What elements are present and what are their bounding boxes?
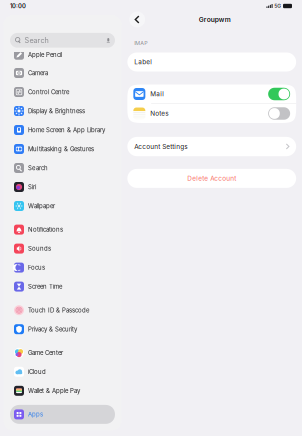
button[interactable]: Search xyxy=(10,158,115,177)
staticText: 10:00 xyxy=(10,2,26,10)
staticText: Focus xyxy=(28,264,45,271)
button[interactable]: Apple Pencil xyxy=(10,52,115,63)
button[interactable]: Delete Account xyxy=(127,169,296,188)
button[interactable]: Control Centre xyxy=(10,82,115,101)
button[interactable]: Game Center xyxy=(10,343,115,362)
staticText: Display & Brightness xyxy=(28,107,85,115)
staticText: Search xyxy=(28,164,48,172)
staticText: Privacy & Security xyxy=(28,326,77,333)
button[interactable]: iCloud xyxy=(10,362,115,381)
button[interactable]: Siri xyxy=(10,177,115,196)
button[interactable]: Display & Brightness xyxy=(10,101,115,120)
staticText: Wallpaper xyxy=(28,202,55,210)
button[interactable]: Camera xyxy=(10,63,115,82)
button[interactable]: Back xyxy=(128,10,147,29)
button[interactable]: Screen Time xyxy=(10,277,115,296)
staticText: Wallet & Apple Pay xyxy=(28,387,80,394)
button[interactable]: Apps xyxy=(10,405,115,424)
staticText: Delete Account xyxy=(187,174,236,182)
staticText: Apple Pencil xyxy=(28,51,62,58)
button[interactable]: Multitasking & Gestures xyxy=(10,139,115,158)
staticText: Home Screen & App Library xyxy=(28,126,105,134)
button[interactable]: Focus xyxy=(10,258,115,277)
button[interactable]: Sounds xyxy=(10,239,115,258)
staticText: Game Center xyxy=(28,349,63,356)
button[interactable]: Privacy & Security xyxy=(10,320,115,339)
button[interactable]: Account Settings xyxy=(127,137,296,156)
staticText: Siri xyxy=(28,183,36,191)
staticText: Camera xyxy=(28,69,48,77)
staticText: Account Settings xyxy=(134,143,187,150)
staticText: Label xyxy=(134,58,152,66)
button[interactable]: Touch ID & Passcode xyxy=(10,301,115,320)
staticText: Screen Time xyxy=(28,283,62,290)
staticText: Search xyxy=(25,36,49,45)
staticText: iCloud xyxy=(28,368,46,375)
staticText: Control Centre xyxy=(28,88,69,96)
staticText: Notes xyxy=(150,110,168,117)
button[interactable]: Notifications xyxy=(10,220,115,239)
staticText: Groupwm xyxy=(199,15,231,24)
staticText: Mail xyxy=(150,90,164,98)
button[interactable]: Wallet & Apple Pay xyxy=(10,381,115,400)
staticText: Notifications xyxy=(28,226,63,233)
staticText: Sounds xyxy=(28,245,51,252)
staticText: 5G xyxy=(274,3,281,9)
button[interactable]: Home Screen & App Library xyxy=(10,120,115,139)
staticText: Apps xyxy=(28,411,43,418)
button[interactable]: Wallpaper xyxy=(10,196,115,215)
staticText: Multitasking & Gestures xyxy=(28,145,94,153)
staticText: IMAP xyxy=(134,40,147,46)
staticText: Touch ID & Passcode xyxy=(28,307,89,314)
